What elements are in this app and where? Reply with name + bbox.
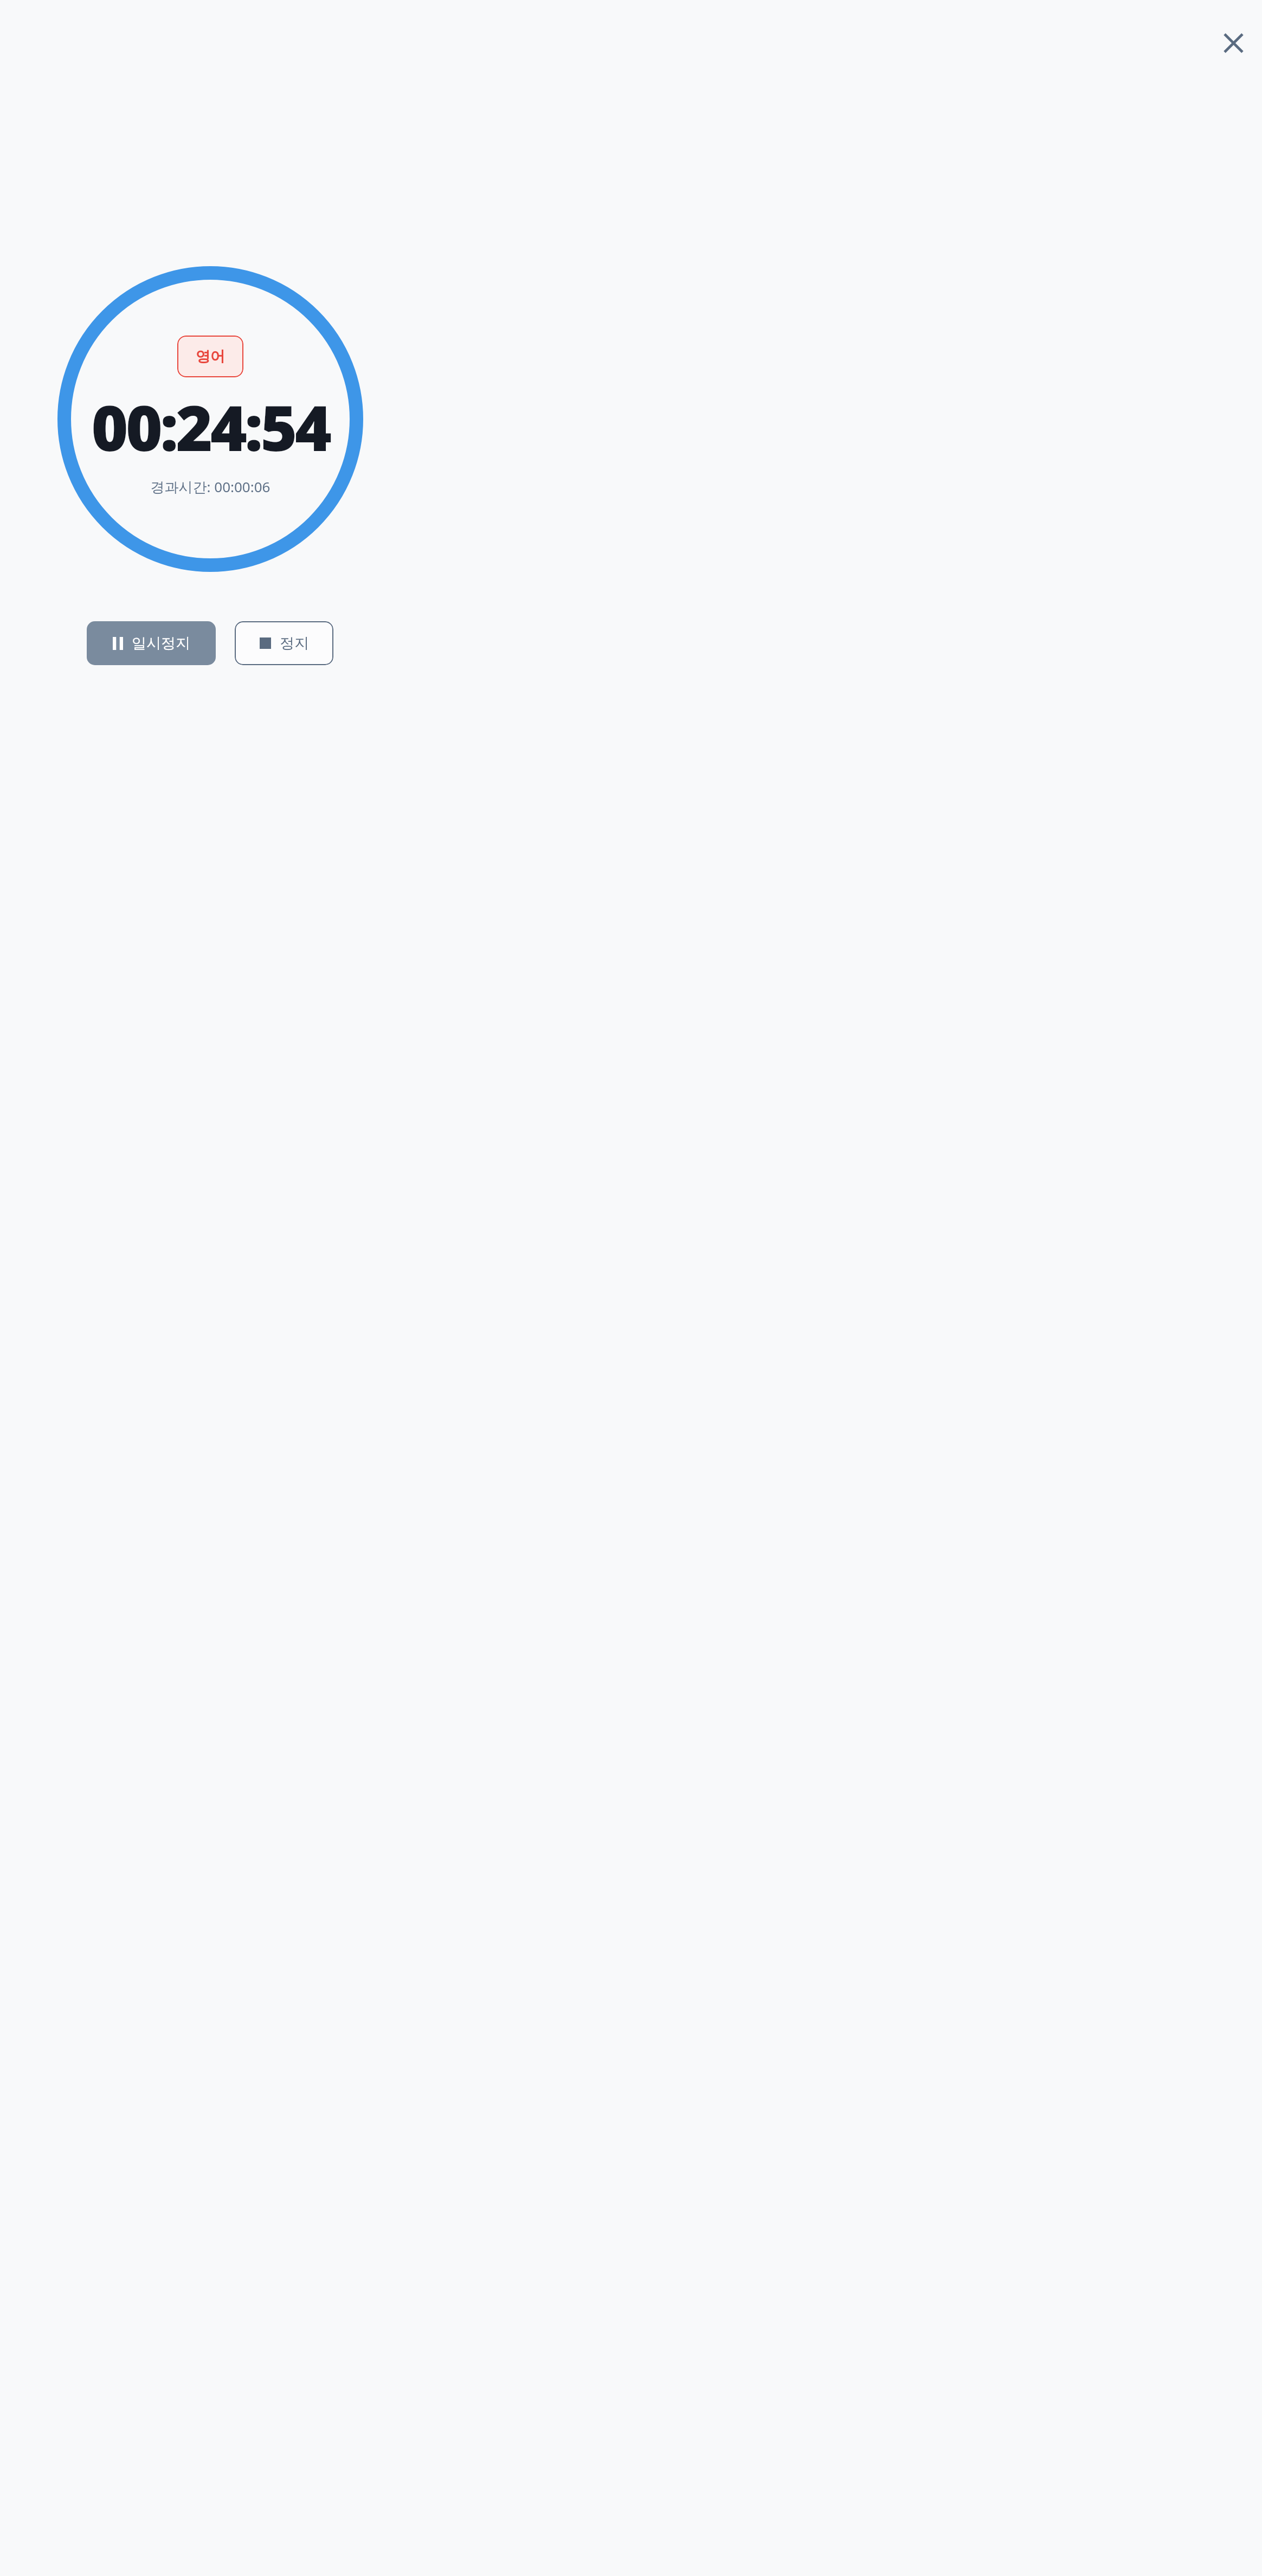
button[interactable]: 일시정지 [87,621,216,665]
staticText: 경과시간: 00:00:06 [57,477,363,497]
staticText: 일시정지 [132,634,190,653]
staticText: 00:24:54 [57,384,363,469]
staticText: 정지 [280,634,309,653]
button[interactable]: Close [1216,25,1251,60]
button[interactable]: 정지 [235,621,333,665]
staticText: 영어 [196,347,225,366]
button[interactable]: 영어 [177,336,243,377]
